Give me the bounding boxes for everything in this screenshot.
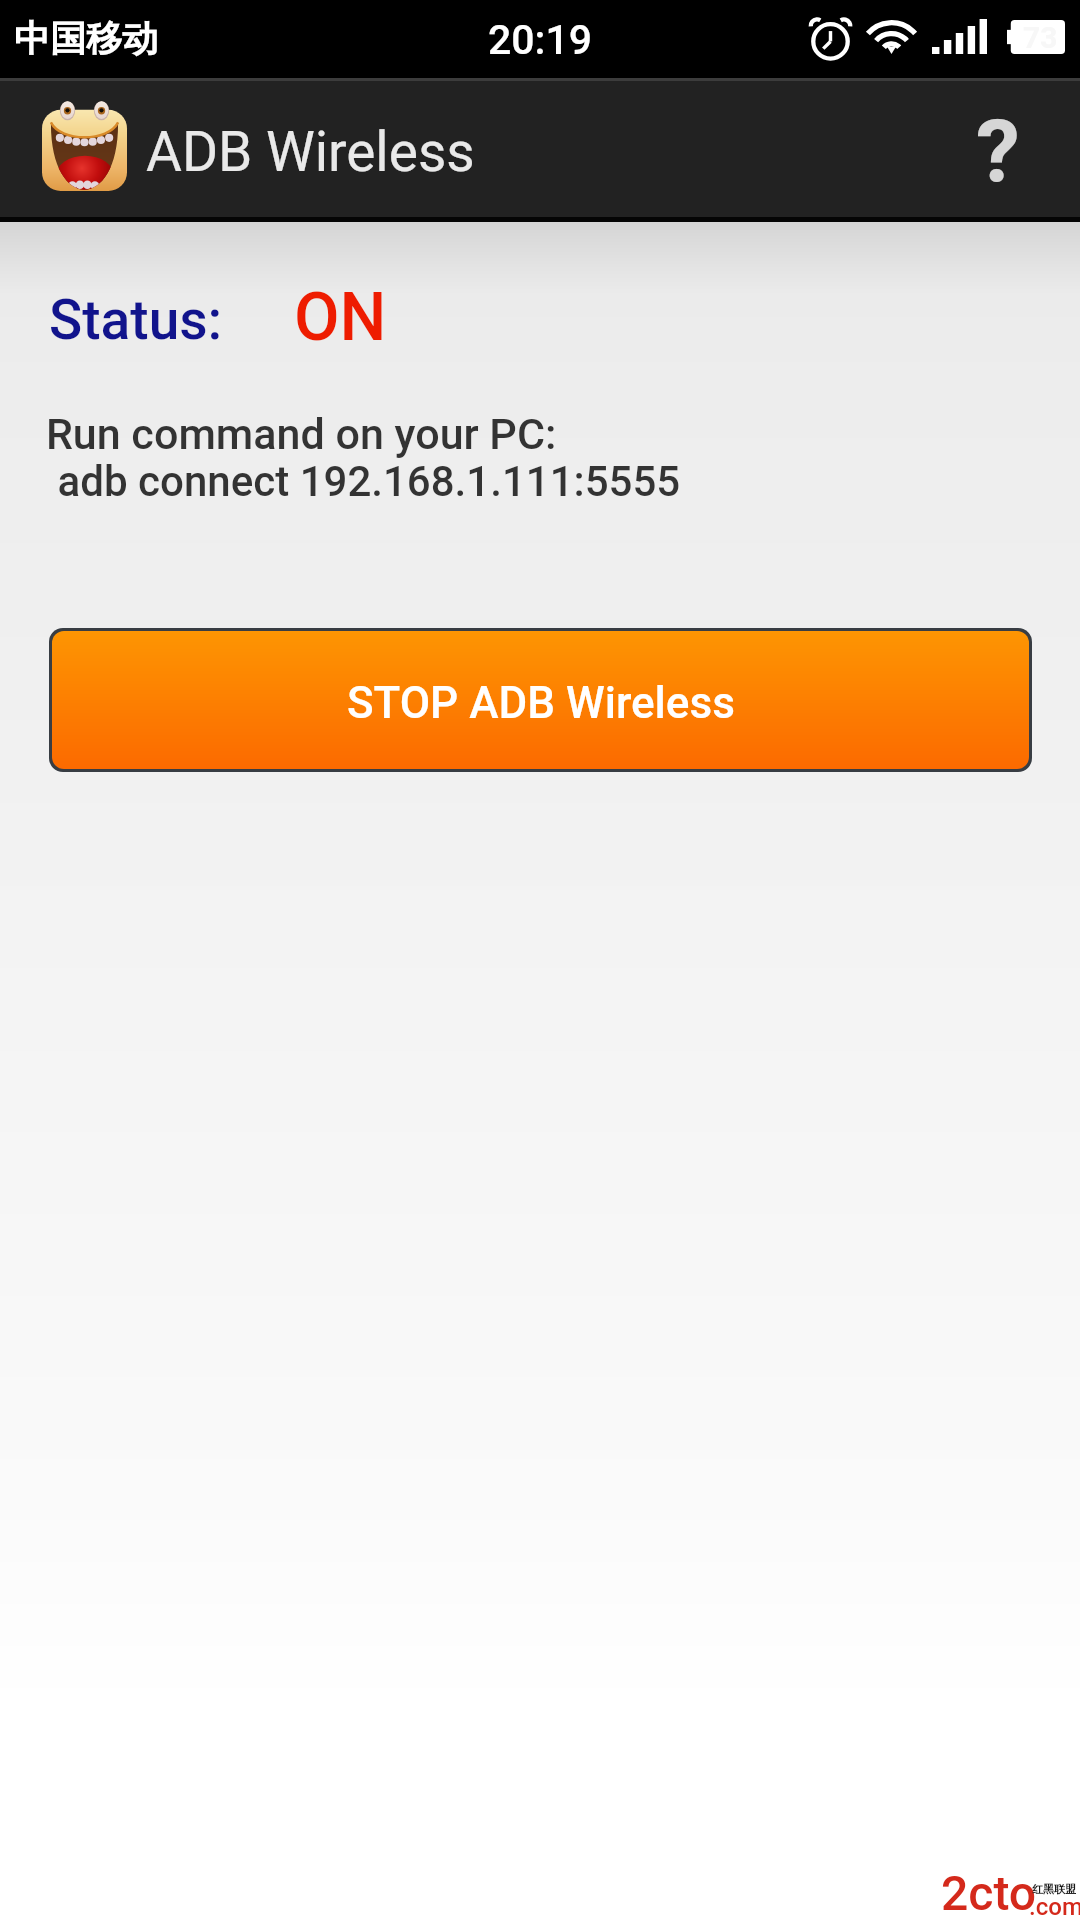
staticText: adb connect 192.168.1.111:5555 bbox=[47, 457, 681, 506]
staticText: 73 bbox=[1023, 20, 1058, 54]
staticText: 20:19 bbox=[488, 16, 593, 64]
staticText: 2cto bbox=[941, 1865, 1037, 1920]
staticText: ADB Wireless bbox=[146, 120, 475, 184]
button[interactable]: STOP ADB Wireless bbox=[49, 628, 1032, 772]
button[interactable]: Help bbox=[950, 78, 1080, 222]
staticText: ON bbox=[294, 279, 387, 356]
staticText: 红黑联盟 bbox=[1032, 1882, 1076, 1896]
staticText: Run command on your PC: bbox=[46, 409, 557, 459]
staticText: .com bbox=[1029, 1893, 1080, 1920]
staticText: STOP ADB Wireless bbox=[347, 677, 735, 729]
staticText: 中国移动 bbox=[14, 16, 158, 61]
staticText: ? bbox=[976, 99, 1020, 202]
staticText: Status: bbox=[49, 288, 223, 352]
